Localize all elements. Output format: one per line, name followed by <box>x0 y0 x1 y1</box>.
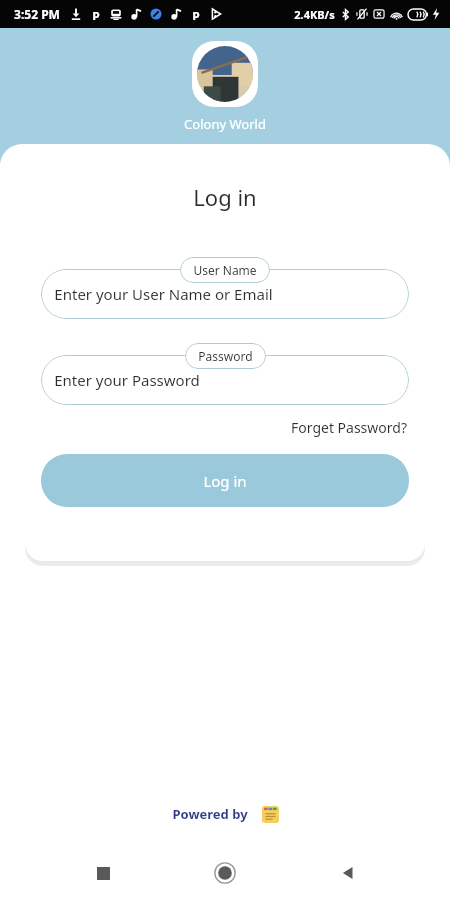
staticText: Enter your User Name or Email <box>54 284 273 304</box>
staticText: Enter your Password <box>54 370 200 390</box>
staticText: Powered by <box>172 805 248 823</box>
button[interactable]: Forget Password? <box>289 415 409 440</box>
button[interactable]: Log in <box>41 454 409 507</box>
staticText: Password <box>198 348 253 364</box>
staticText: P <box>92 8 100 20</box>
button[interactable]: Recent apps <box>83 853 123 893</box>
staticText: P <box>192 8 200 20</box>
staticText: Colony World <box>184 115 266 133</box>
staticText: Forget Password? <box>291 418 407 437</box>
button[interactable]: Enter your User Name or Email <box>41 269 409 319</box>
staticText: User Name <box>193 262 257 278</box>
button[interactable]: Back <box>328 853 368 893</box>
staticText: 2.4KB/s <box>294 7 335 22</box>
staticText: Log in <box>203 471 247 491</box>
button[interactable]: Home <box>205 853 245 893</box>
staticText: 3:52 PM <box>14 6 60 22</box>
staticText: Log in <box>193 182 257 212</box>
button[interactable]: Enter your Password <box>41 355 409 405</box>
